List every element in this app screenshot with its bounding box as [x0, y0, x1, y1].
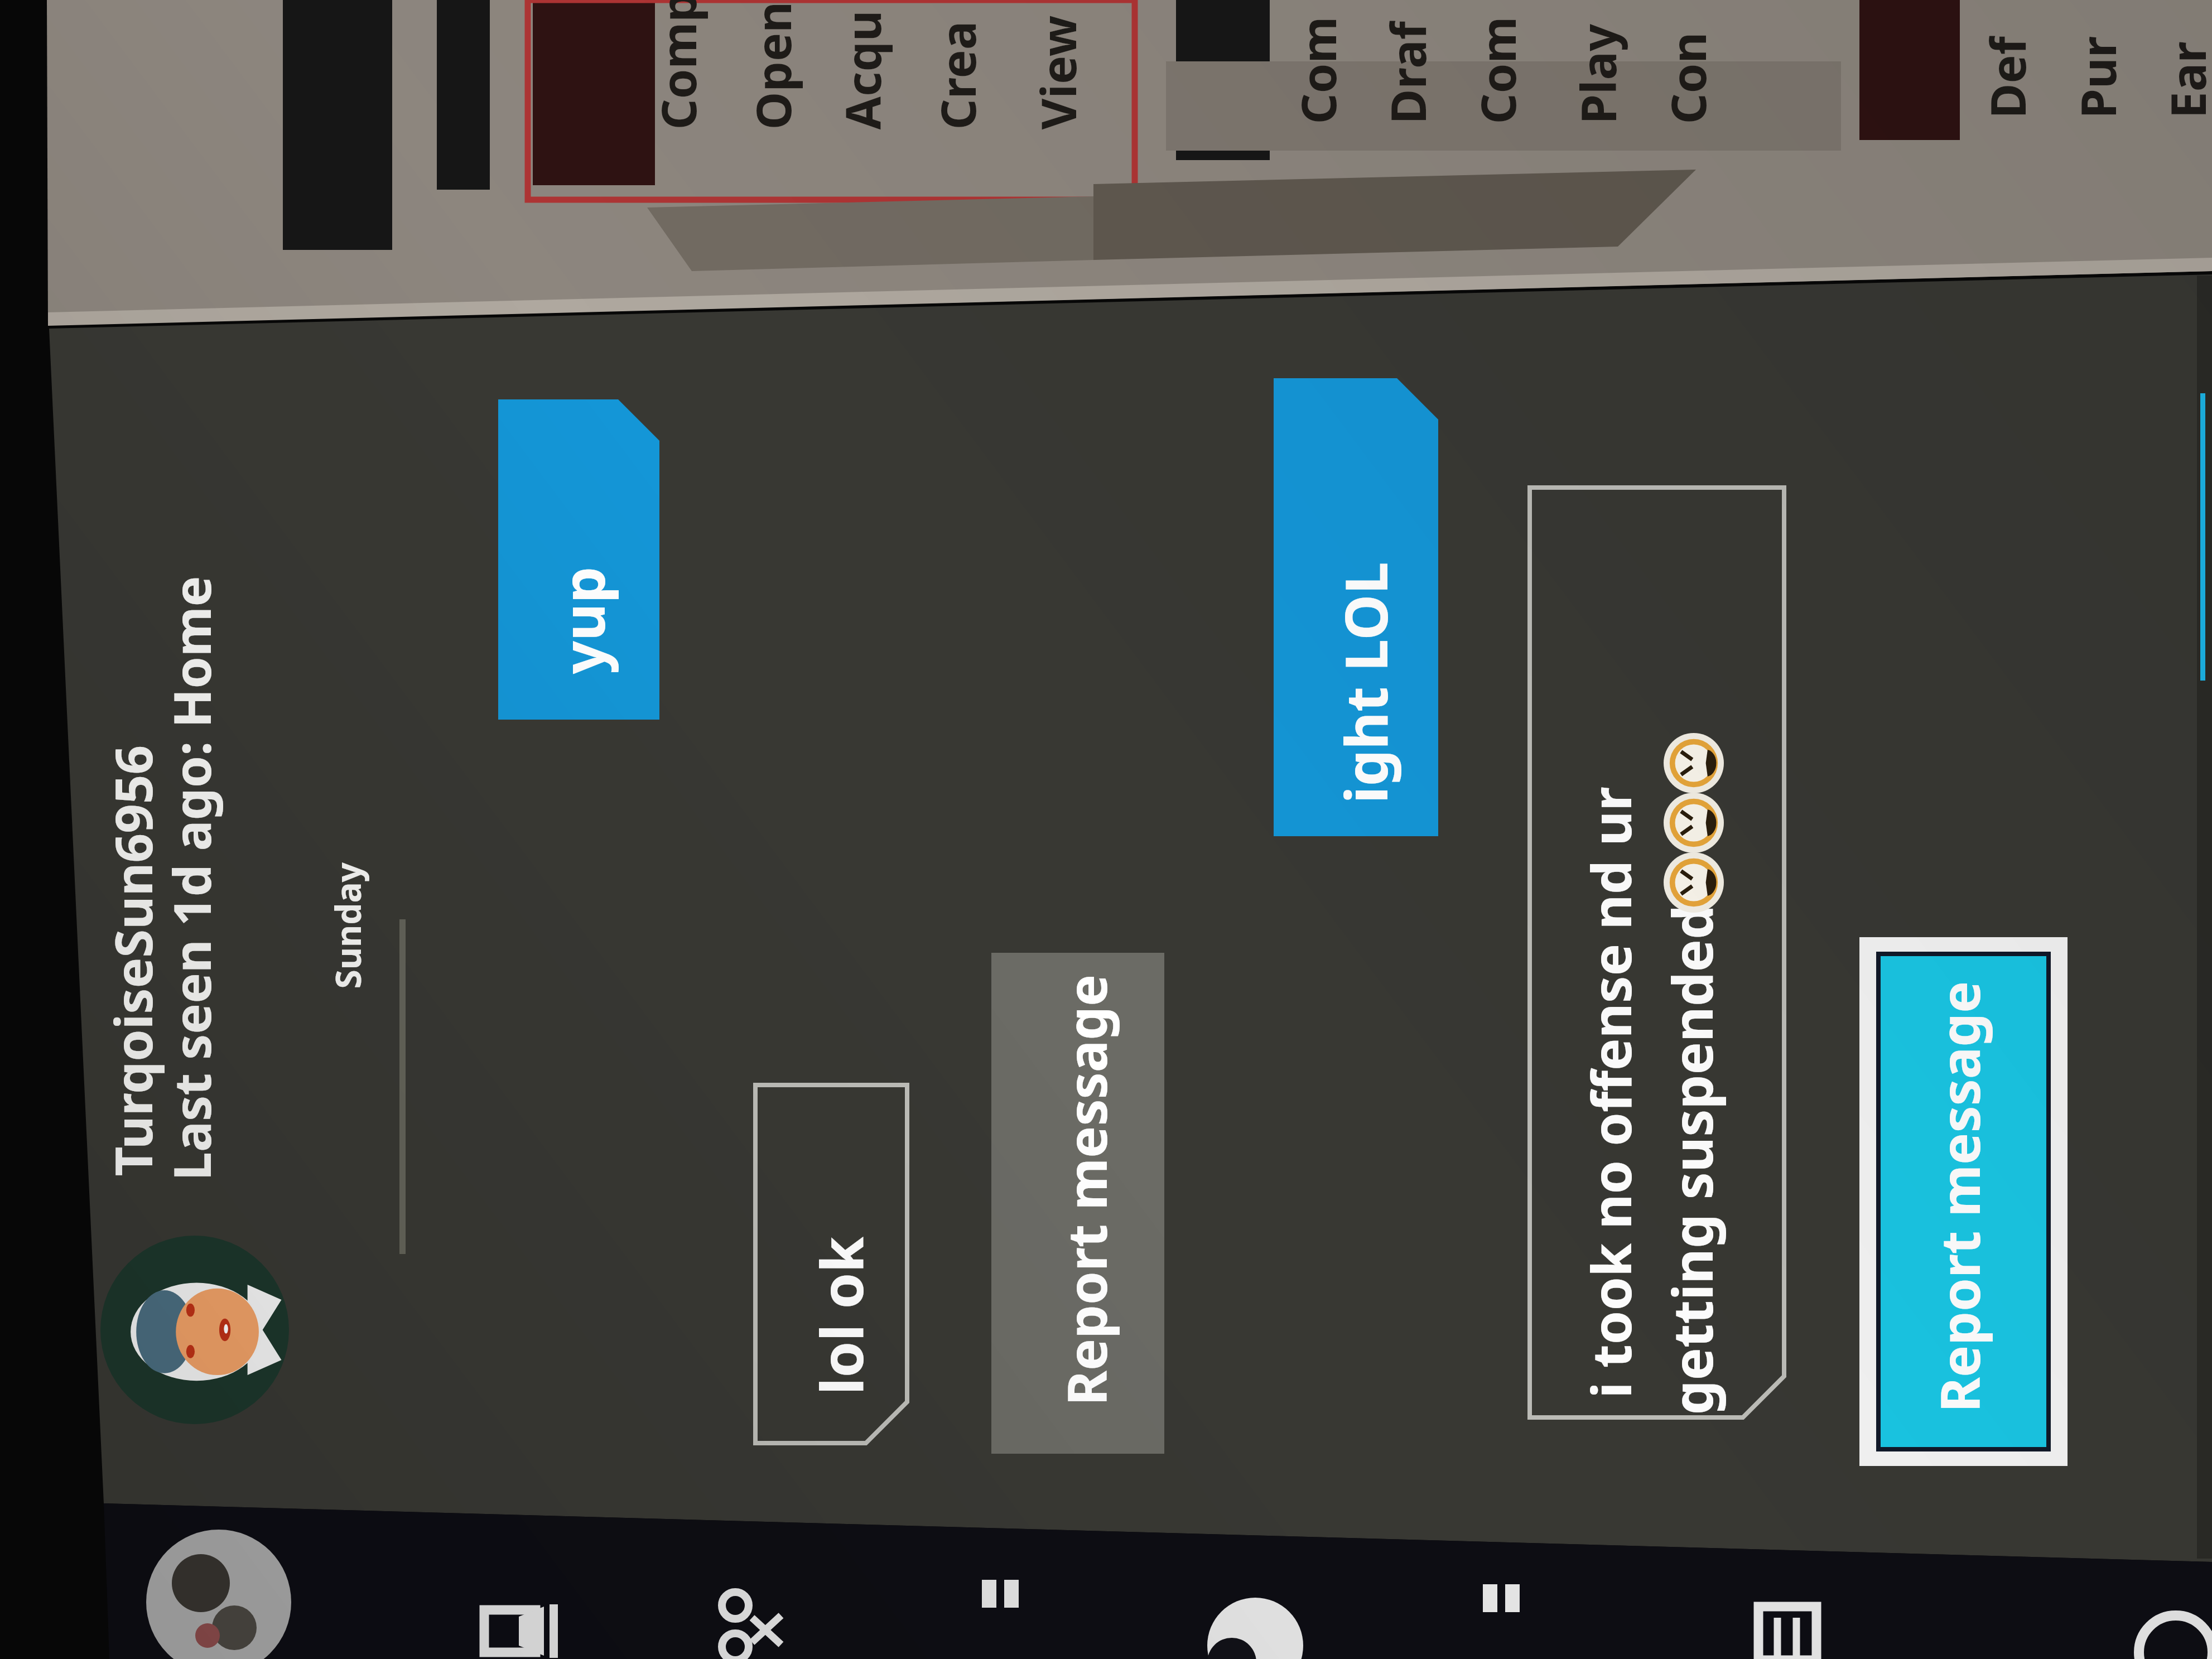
button[interactable]: Report message	[1859, 937, 2068, 1466]
staticText: Crea	[924, 21, 988, 130]
button[interactable]: lol ok message	[755, 1085, 907, 1443]
staticText: i took no offense nd ur	[1573, 786, 1645, 1398]
button[interactable]: Settings	[2109, 1590, 2212, 1659]
staticText: ight LOL	[1325, 561, 1403, 804]
staticText: yup	[543, 566, 620, 674]
staticText: Comp	[645, 0, 709, 130]
staticText: lol ok	[801, 1236, 878, 1395]
button[interactable]: Notifications, 22 new	[1450, 1562, 1618, 1659]
staticText: TurqoiseSun6956	[97, 745, 166, 1176]
staticText: Sunday	[324, 862, 370, 989]
button[interactable]: Xbox guide	[1183, 1579, 1350, 1659]
button[interactable]: Profile	[139, 1528, 307, 1659]
staticText: Com	[1464, 16, 1528, 124]
staticText: Def	[1974, 36, 2038, 119]
staticText: Con	[1654, 32, 1719, 124]
button[interactable]: Profile picture	[100, 1236, 289, 1424]
button[interactable]: Capture	[457, 1556, 625, 1659]
staticText: Play	[1565, 24, 1629, 124]
staticText: Open	[739, 1, 804, 130]
button[interactable]: i took no offense message	[1530, 488, 1784, 1417]
staticText: Acqu	[829, 10, 893, 130]
staticText: Report message	[1922, 981, 1994, 1412]
button[interactable]: Store	[1724, 1573, 1891, 1659]
button[interactable]: ight LOL message	[1274, 378, 1438, 836]
staticText: Ear	[2154, 41, 2212, 119]
button[interactable]: Messages, 29 new	[948, 1556, 1116, 1659]
staticText: Report message	[1049, 974, 1121, 1406]
button[interactable]: yup message	[498, 399, 659, 720]
staticText: getting suspended	[1654, 905, 1727, 1415]
staticText: Com	[1285, 16, 1349, 124]
staticText: Last seen 1d ago: Home	[156, 575, 225, 1181]
staticText: Pur	[2064, 36, 2129, 119]
staticText: Draf	[1374, 21, 1438, 124]
staticText: View	[1025, 15, 1089, 130]
button[interactable]: Report message	[991, 953, 1164, 1454]
button[interactable]: Parties and chats	[692, 1562, 859, 1659]
